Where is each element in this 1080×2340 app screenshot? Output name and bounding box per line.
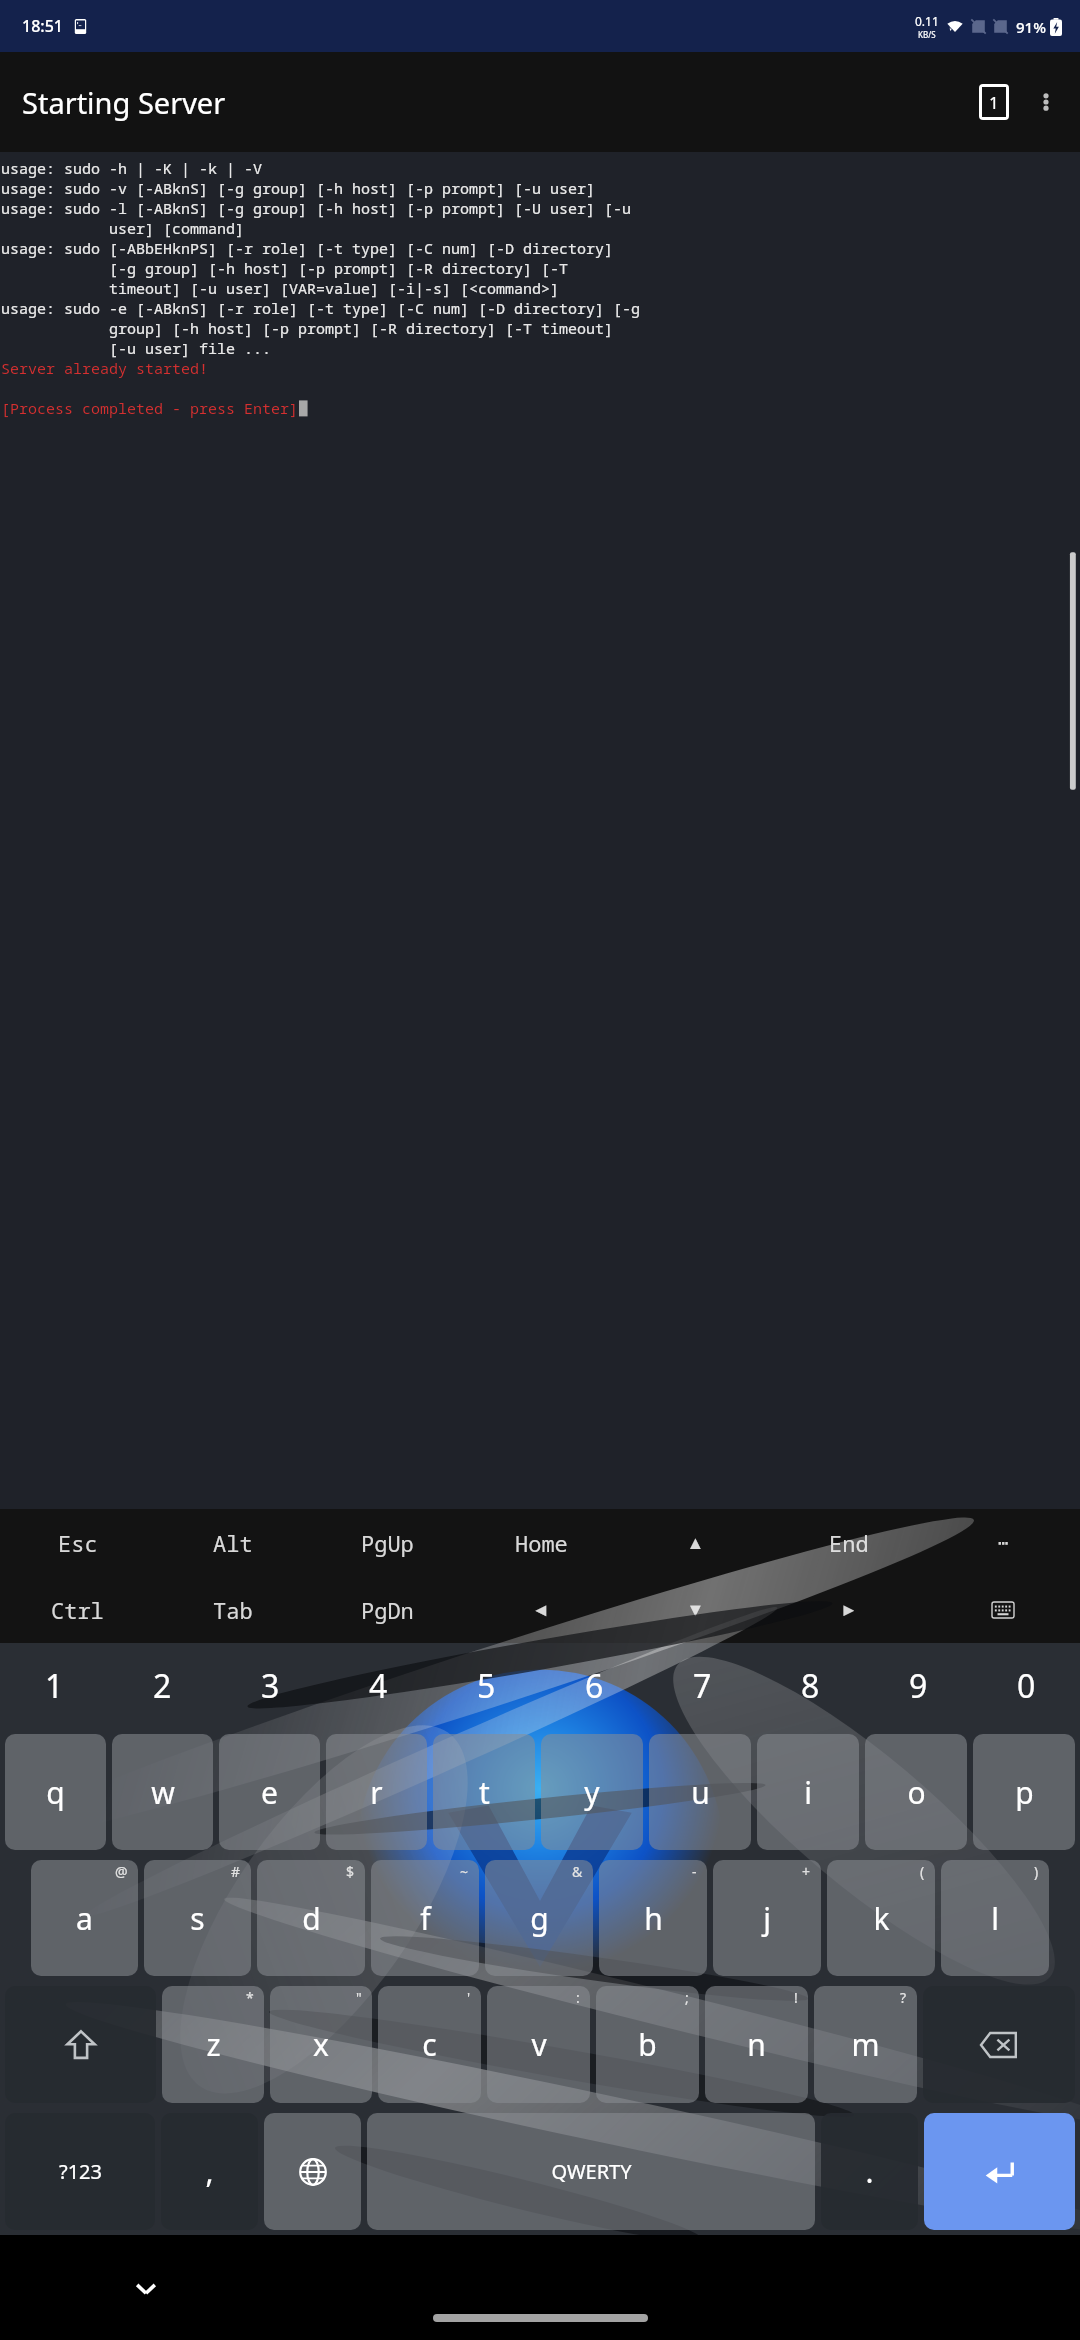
button[interactable]: ▲: [618, 1509, 772, 1576]
staticText: ;: [685, 1988, 689, 2007]
staticText: QWERTY: [551, 2158, 632, 2185]
button[interactable]: v: [487, 1986, 590, 2103]
staticText: group] [-h host] [-p prompt] [-R directo…: [1, 318, 614, 338]
button[interactable]: Esc: [0, 1509, 155, 1576]
button[interactable]: j: [713, 1860, 821, 1976]
staticText: u: [691, 1772, 710, 1813]
staticText: ⋯: [998, 1532, 1009, 1553]
button[interactable]: e: [219, 1734, 320, 1850]
button[interactable]: Sessions: [968, 76, 1020, 128]
staticText: 91%: [1016, 17, 1046, 37]
button[interactable]: ▶: [772, 1576, 926, 1643]
staticText: Esc: [58, 1528, 98, 1558]
button[interactable]: a: [31, 1860, 138, 1976]
button[interactable]: End: [772, 1509, 926, 1576]
button[interactable]: 4: [324, 1643, 432, 1729]
staticText: user] [command]: [1, 218, 245, 238]
button[interactable]: ⋯: [926, 1509, 1080, 1576]
staticText: .: [865, 2151, 874, 2192]
button[interactable]: .: [821, 2113, 918, 2230]
staticText: x: [313, 2024, 329, 2065]
staticText: g: [530, 1898, 549, 1939]
button[interactable]: b: [596, 1986, 699, 2103]
button[interactable]: ▼: [618, 1576, 772, 1643]
staticText: (: [920, 1862, 925, 1881]
button[interactable]: n: [705, 1986, 808, 2103]
staticText: usage: sudo [-ABbEHknPS] [-r role] [-t t…: [1, 238, 614, 258]
button[interactable]: 5: [432, 1643, 540, 1729]
button[interactable]: 3: [216, 1643, 324, 1729]
button[interactable]: PgUp: [310, 1509, 464, 1576]
staticText: PgUp: [361, 1528, 414, 1558]
button[interactable]: Backspace: [923, 1986, 1075, 2103]
staticText: ~: [460, 1862, 469, 1881]
staticText: 6: [585, 1664, 604, 1708]
button[interactable]: Ctrl: [0, 1576, 155, 1643]
button[interactable]: q: [5, 1734, 106, 1850]
staticText: i: [804, 1772, 812, 1813]
button[interactable]: y: [541, 1734, 643, 1850]
button[interactable]: 9: [864, 1643, 972, 1729]
button[interactable]: 6: [540, 1643, 648, 1729]
staticText: @: [115, 1862, 128, 1881]
button[interactable]: 1: [0, 1643, 108, 1729]
staticText: Tab: [213, 1595, 253, 1625]
staticText: s: [190, 1898, 205, 1939]
button[interactable]: p: [973, 1734, 1075, 1850]
button[interactable]: k: [827, 1860, 935, 1976]
staticText: 4: [369, 1664, 388, 1708]
button[interactable]: ◀: [464, 1576, 618, 1643]
button[interactable]: z: [162, 1986, 264, 2103]
staticText: a: [76, 1898, 93, 1939]
button[interactable]: x: [270, 1986, 372, 2103]
staticText: ▶: [838, 1597, 860, 1622]
button[interactable]: Change language: [264, 2113, 361, 2230]
button[interactable]: m: [814, 1986, 917, 2103]
button[interactable]: Hide keyboard: [118, 2260, 174, 2316]
staticText: *: [246, 1988, 254, 2007]
button[interactable]: 2: [108, 1643, 216, 1729]
button[interactable]: 8: [756, 1643, 864, 1729]
staticText: [Process completed - press Enter]: [1, 398, 299, 418]
button[interactable]: i: [757, 1734, 859, 1850]
button[interactable]: Toggle keyboard: [926, 1576, 1080, 1643]
button[interactable]: Home: [464, 1509, 618, 1576]
staticText: o: [907, 1772, 926, 1813]
button[interactable]: d: [257, 1860, 365, 1976]
button[interactable]: f: [371, 1860, 479, 1976]
staticText: p: [1015, 1772, 1034, 1813]
staticText: c: [422, 2024, 437, 2065]
button[interactable]: Shift: [5, 1986, 156, 2103]
button[interactable]: Enter: [924, 2113, 1075, 2230]
staticText: m: [851, 2024, 880, 2065]
button[interactable]: 7: [648, 1643, 756, 1729]
button[interactable]: ,: [161, 2113, 258, 2230]
button[interactable]: 0: [972, 1643, 1080, 1729]
button[interactable]: ?123: [5, 2113, 155, 2230]
button[interactable]: Alt: [155, 1509, 310, 1576]
button[interactable]: QWERTY: [367, 2113, 815, 2230]
button[interactable]: r: [326, 1734, 427, 1850]
button[interactable]: w: [112, 1734, 213, 1850]
button[interactable]: Tab: [155, 1576, 310, 1643]
button[interactable]: g: [485, 1860, 593, 1976]
staticText: d: [302, 1898, 321, 1939]
staticText: r: [370, 1772, 383, 1813]
button[interactable]: t: [433, 1734, 535, 1850]
button[interactable]: PgDn: [310, 1576, 464, 1643]
button[interactable]: c: [378, 1986, 481, 2103]
staticText: v: [531, 2024, 547, 2065]
button[interactable]: o: [865, 1734, 967, 1850]
button[interactable]: More options: [1020, 76, 1072, 128]
staticText: 7: [693, 1664, 712, 1708]
staticText: 1: [45, 1664, 64, 1708]
button[interactable]: h: [599, 1860, 707, 1976]
staticText: -: [692, 1862, 697, 1881]
staticText: ?: [900, 1988, 907, 2007]
staticText: Ctrl: [51, 1595, 104, 1625]
button[interactable]: u: [649, 1734, 751, 1850]
button[interactable]: s: [144, 1860, 251, 1976]
staticText: [-u user] file ...: [1, 338, 272, 358]
button[interactable]: l: [941, 1860, 1049, 1976]
staticText: #: [231, 1862, 241, 1881]
